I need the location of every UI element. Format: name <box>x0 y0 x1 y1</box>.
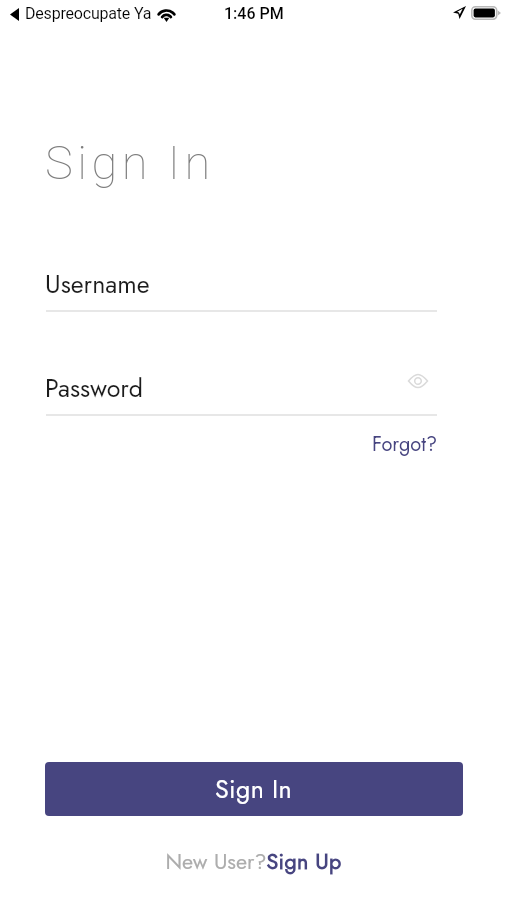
button[interactable]: New User?Sign Up <box>0 843 507 879</box>
button[interactable]: Forgot? <box>330 426 438 462</box>
staticText: 1:46 PM <box>224 4 284 23</box>
button[interactable]: Username <box>45 260 437 308</box>
staticText: Sign In <box>215 771 293 807</box>
button[interactable]: Sign In <box>45 762 463 816</box>
staticText: Forgot? <box>372 430 438 459</box>
staticText: New User?Sign Up <box>165 846 342 877</box>
staticText: Password <box>45 370 144 406</box>
staticText: Sign In <box>45 135 215 190</box>
staticText: Username <box>45 266 150 302</box>
staticText: Despreocupate Ya <box>25 4 152 23</box>
button[interactable]: Password <box>45 364 437 412</box>
button[interactable]: Show password <box>400 363 436 399</box>
